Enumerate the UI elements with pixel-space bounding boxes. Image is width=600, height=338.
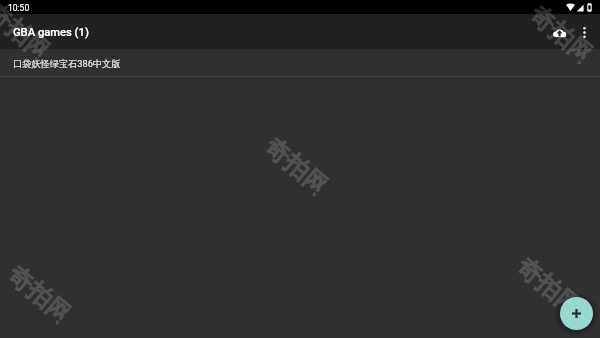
staticText: 奇拍网 [523, 0, 597, 68]
staticText: GBA games (1) [13, 26, 89, 39]
button[interactable]: Upload to cloud [544, 16, 570, 48]
button[interactable]: 口袋妖怪绿宝石386中文版 [0, 49, 600, 77]
staticText: 奇拍网 [0, 0, 54, 65]
staticText: 奇拍网 [258, 131, 332, 200]
staticText: 10:50 [8, 3, 30, 13]
staticText: 奇拍网 [510, 251, 584, 320]
button[interactable]: More options [570, 16, 600, 48]
staticText: 奇拍网 [1, 259, 75, 328]
staticText: 口袋妖怪绿宝石386中文版 [13, 58, 121, 70]
button[interactable]: Add [560, 297, 593, 330]
